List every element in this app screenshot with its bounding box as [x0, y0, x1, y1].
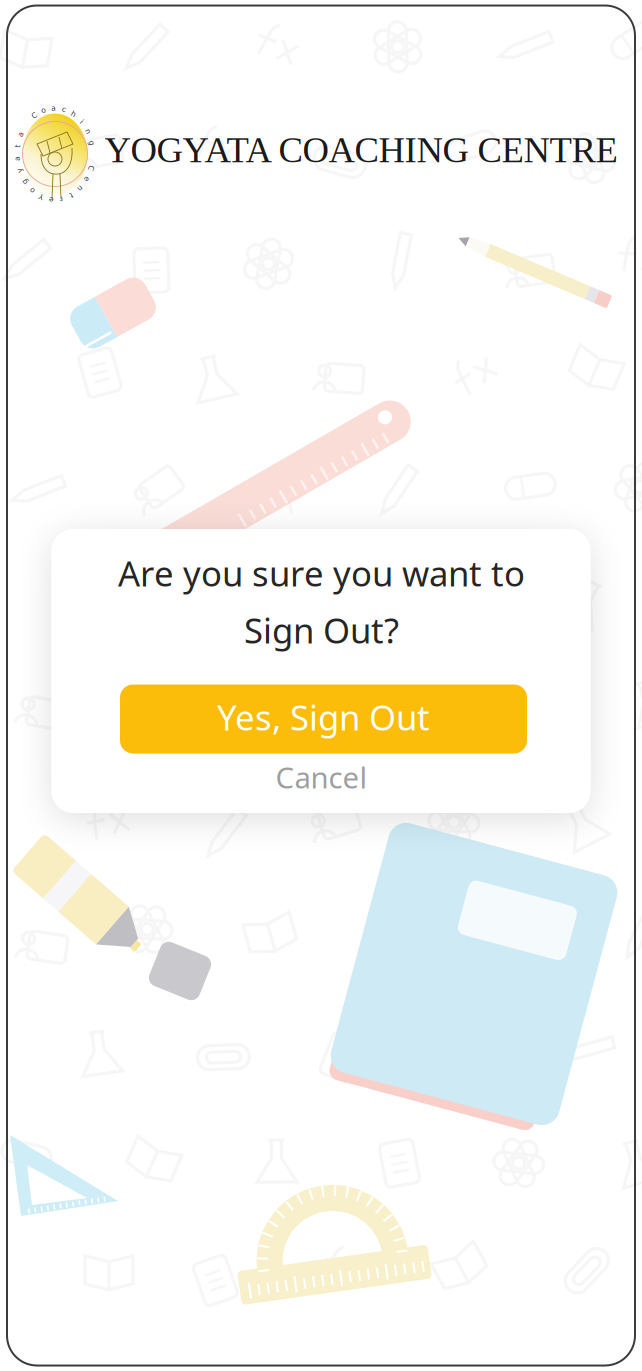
- staticText: YOGYATA COACHING CENTRE: [104, 130, 617, 170]
- staticText: n: [86, 127, 91, 136]
- staticText: Sign Out?: [244, 607, 399, 653]
- button[interactable]: Yes, Sign Out: [120, 684, 527, 753]
- staticText: g: [22, 177, 27, 186]
- staticText: g: [89, 139, 94, 147]
- staticText: a: [15, 154, 20, 163]
- staticText: Y: [38, 192, 43, 201]
- staticText: e: [49, 195, 54, 204]
- staticText: t: [16, 142, 19, 150]
- staticText: h: [71, 110, 76, 118]
- staticText: a: [18, 130, 23, 138]
- staticText: t: [70, 191, 73, 200]
- staticText: a: [51, 104, 56, 112]
- staticText: i: [81, 117, 83, 126]
- staticText: y: [18, 166, 22, 175]
- staticText: n: [77, 184, 82, 193]
- staticText: o: [29, 186, 34, 195]
- staticText: Yes, Sign Out: [217, 694, 430, 740]
- staticText: Cancel: [275, 757, 367, 796]
- staticText: C: [89, 164, 94, 172]
- staticText: c: [62, 105, 66, 114]
- button[interactable]: Cancel: [221, 755, 421, 799]
- staticText: o: [41, 106, 46, 114]
- staticText: r: [60, 195, 63, 204]
- staticText: C: [32, 111, 37, 120]
- staticText: e: [84, 175, 89, 184]
- staticText: Are you sure you want to: [118, 550, 525, 596]
